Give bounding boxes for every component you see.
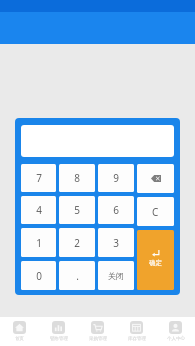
staticText: 关闭 [108,271,124,281]
button[interactable]: 确定 [137,230,174,290]
button[interactable] [21,125,174,157]
button[interactable]: 个人中心 [156,317,195,346]
staticText: . [76,269,79,283]
staticText: 个人中心 [167,336,185,342]
staticText: 7 [36,171,42,185]
button[interactable]: 4 [21,196,56,224]
button[interactable]: 5 [59,196,95,224]
staticText: 采购管理 [89,336,107,342]
button[interactable]: 6 [98,196,134,224]
button[interactable]: 8 [59,164,95,192]
staticText: 1 [36,236,42,250]
staticText: 4 [36,203,42,217]
button[interactable]: 销售管理 [39,317,78,346]
staticText: 8 [74,171,80,185]
staticText: 2 [74,236,80,250]
button[interactable]: 采购管理 [78,317,117,346]
button[interactable]: 0 [21,261,56,290]
staticText: 库存管理 [128,336,146,342]
staticText: 6 [113,203,119,217]
button[interactable]: 3 [98,228,134,257]
button[interactable]: 关闭 [98,261,134,290]
staticText: 5 [74,203,80,217]
button[interactable]: 2 [59,228,95,257]
button[interactable]: C [137,197,174,226]
button[interactable]: . [59,261,95,290]
staticText: 3 [113,236,119,250]
button[interactable]: 首页 [0,317,39,346]
staticText: 0 [36,269,42,283]
button[interactable]: 1 [21,228,56,257]
staticText: 销售管理 [50,336,68,342]
button[interactable]: 7 [21,164,56,192]
staticText: 确定 [149,259,162,267]
staticText: 9 [113,171,119,185]
button[interactable]: 9 [98,164,134,192]
button[interactable]: 库存管理 [117,317,156,346]
button[interactable]: Backspace [137,164,174,193]
staticText: C [152,205,159,219]
staticText: 首页 [15,336,24,342]
